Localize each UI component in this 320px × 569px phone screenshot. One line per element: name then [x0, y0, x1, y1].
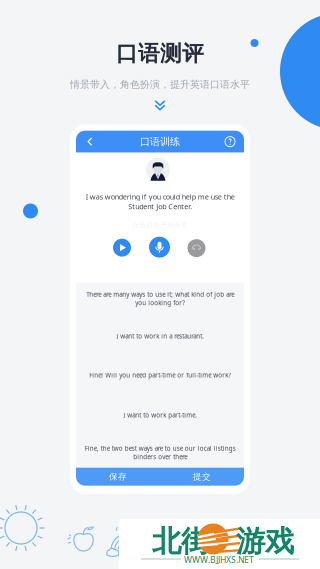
button[interactable]: 保存 — [76, 468, 160, 486]
staticText: WWW.BJJHXS.NET — [184, 554, 254, 566]
button[interactable]: Back — [80, 131, 100, 153]
button[interactable]: Help — [220, 131, 240, 153]
staticText: 口语训练 — [140, 135, 180, 148]
staticText: 点击话筒开始录音 — [132, 221, 188, 229]
staticText: I was wondering if you could help me use… — [85, 192, 234, 211]
staticText: There are many ways to use it; what kind… — [86, 290, 234, 307]
staticText: 保存 — [109, 471, 127, 482]
button[interactable]: Playback — [187, 239, 206, 258]
staticText: 提交 — [193, 471, 211, 482]
button[interactable]: Record — [149, 237, 170, 258]
button[interactable]: Play — [113, 239, 131, 257]
staticText: 口语测评 — [116, 40, 204, 67]
staticText: 情景带入，角色扮演，提升英语口语水平 — [70, 78, 250, 91]
staticText: 北街 — [152, 523, 210, 560]
staticText: Fine, the two best ways are to use our l… — [84, 444, 235, 461]
staticText: Fine! Will you need part-time or full-ti… — [89, 371, 231, 379]
staticText: I want to work in a restaurant. — [116, 332, 204, 340]
staticText: I want to work part-time. — [123, 411, 197, 419]
staticText: 游戏 — [236, 523, 294, 560]
button[interactable]: 提交 — [160, 468, 244, 486]
